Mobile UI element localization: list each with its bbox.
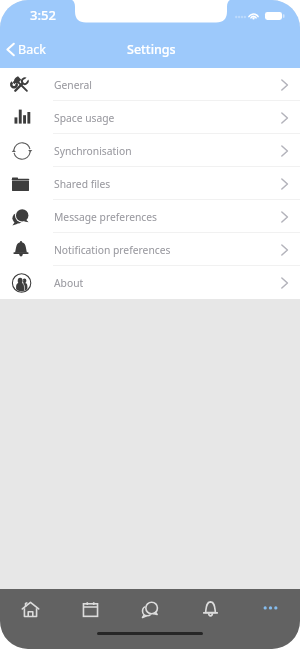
button[interactable]: Space usage: [0, 101, 300, 134]
staticText: Message preferences: [54, 210, 158, 224]
button[interactable]: Notification preferences: [0, 233, 300, 266]
staticText: Notification preferences: [54, 243, 171, 257]
staticText: General: [54, 78, 92, 92]
staticText: Settings: [127, 41, 176, 58]
button[interactable]: About: [0, 266, 300, 299]
staticText: Space usage: [54, 111, 115, 125]
button[interactable]: Message preferences: [0, 200, 300, 233]
button[interactable]: Synchronisation: [0, 134, 300, 167]
button[interactable]: Shared files: [0, 167, 300, 200]
button[interactable]: General: [0, 68, 300, 101]
button[interactable]: More: [240, 589, 300, 629]
staticText: Synchronisation: [54, 144, 132, 158]
staticText: 3:52: [30, 6, 56, 24]
button[interactable]: Back: [0, 41, 52, 58]
button[interactable]: Home: [0, 589, 60, 629]
button[interactable]: Notifications: [180, 589, 240, 629]
button[interactable]: Messages: [120, 589, 180, 629]
staticText: About: [54, 276, 84, 290]
staticText: Back: [18, 41, 46, 58]
button[interactable]: Calendar: [60, 589, 120, 629]
staticText: Shared files: [54, 177, 111, 191]
